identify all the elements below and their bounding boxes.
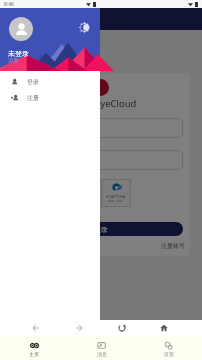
- button[interactable]: Back: [28, 320, 44, 336]
- staticText: 主页: [29, 351, 39, 357]
- staticText: hCAPTCHA: [106, 194, 126, 199]
- staticText: 8:46: [4, 1, 14, 8]
- staticText: 未登录: [8, 49, 29, 58]
- button[interactable]: Refresh: [114, 320, 130, 336]
- button[interactable]: 登录: [0, 74, 100, 90]
- button[interactable]: [19, 150, 183, 170]
- staticText: 游客: [8, 57, 19, 64]
- button[interactable]: 登录: [19, 222, 183, 236]
- button[interactable]: 消息: [68, 336, 135, 360]
- button[interactable]: Home: [156, 320, 172, 336]
- button[interactable]: 主页: [0, 336, 68, 360]
- staticText: 隐私 · 条款: [108, 199, 124, 203]
- staticText: 注册: [27, 94, 39, 102]
- button[interactable]: 注册: [0, 90, 100, 106]
- button[interactable]: 注册账号: [161, 242, 185, 250]
- staticText: 8:46: [4, 1, 14, 8]
- staticText: 设置: [164, 351, 174, 357]
- button[interactable]: Toggle dark mode: [78, 21, 91, 34]
- button[interactable]: hCAPTCHA: [101, 179, 131, 207]
- staticText: 消息: [97, 351, 107, 357]
- button[interactable]: Forward: [71, 320, 87, 336]
- button[interactable]: [19, 118, 183, 138]
- button[interactable]: 设置: [135, 336, 202, 360]
- staticText: 登录: [94, 225, 108, 234]
- staticText: 登录: [27, 78, 39, 86]
- staticText: EyeCloud: [95, 97, 137, 110]
